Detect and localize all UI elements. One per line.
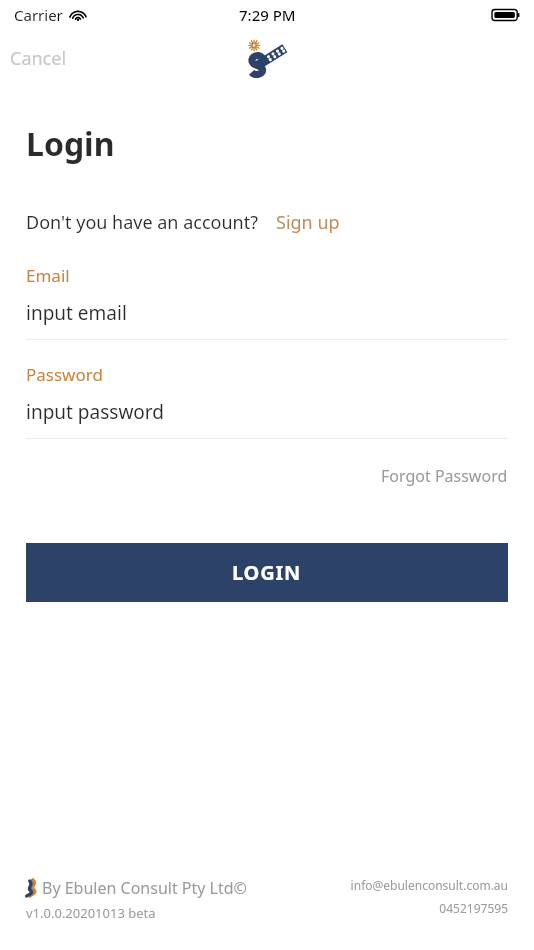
other: App logo [244, 37, 290, 79]
button[interactable]: Cancel [0, 40, 77, 77]
staticText: info@ebulenconsult.com.au [350, 877, 508, 893]
staticText: Email [26, 264, 70, 287]
staticText: 0452197595 [439, 900, 508, 916]
button[interactable]: LOGIN [26, 543, 508, 602]
staticText: Forgot Password [381, 465, 508, 487]
staticText: By Ebulen Consult Pty Ltd© [42, 877, 247, 899]
staticText: Don't you have an account? [26, 210, 259, 235]
staticText: Carrier [14, 5, 63, 25]
button[interactable]: Email [26, 264, 508, 340]
staticText: 7:29 PM [239, 5, 296, 25]
staticText: Sign up [276, 210, 340, 235]
button[interactable]: Sign up [276, 210, 340, 235]
staticText: Password [26, 363, 103, 386]
staticText: v1.0.0.20201013 beta [26, 904, 156, 922]
button[interactable]: 0452197595 [439, 900, 508, 916]
button[interactable]: info@ebulenconsult.com.au [350, 877, 508, 893]
button[interactable]: Password [26, 363, 508, 439]
staticText: Login [26, 122, 115, 166]
button[interactable]: Forgot Password [381, 461, 508, 491]
staticText: Cancel [10, 46, 67, 71]
staticText: LOGIN [232, 559, 302, 586]
staticText: input email [26, 300, 127, 326]
staticText: input password [26, 399, 164, 425]
